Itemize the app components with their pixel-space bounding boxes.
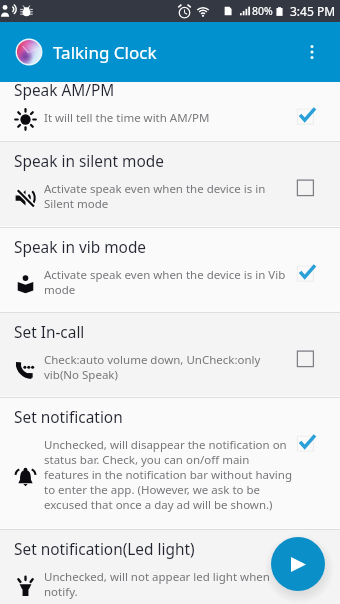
staticText: Speak AM/PM (14, 80, 115, 101)
staticText: Unchecked, will disappear the notificati… (44, 437, 287, 453)
button[interactable] (0, 312, 340, 397)
staticText: excused that once a day ad will be shown… (44, 497, 273, 513)
button[interactable]: Enabled (296, 434, 317, 455)
staticText: Unchecked, will not appear led light whe… (44, 569, 270, 585)
staticText: vib(No Speak) (44, 367, 118, 383)
staticText: Speak in vib mode (14, 237, 147, 258)
staticText: Set In-call (14, 322, 85, 343)
staticText: Set notification (14, 407, 123, 428)
button[interactable] (0, 397, 340, 529)
staticText: Check:auto volume down, UnCheck:only (44, 352, 261, 368)
staticText: mode (44, 282, 76, 298)
staticText: Activate speak even when the device is i… (44, 267, 286, 283)
button[interactable] (0, 141, 340, 227)
button[interactable]: Enabled (296, 264, 317, 285)
button[interactable]: Enabled (296, 107, 317, 128)
button[interactable]: Disabled (296, 566, 317, 587)
staticText: notify. (44, 584, 78, 600)
staticText: It will tell the time with AM/PM (44, 110, 210, 126)
button[interactable]: Play (271, 537, 325, 591)
button[interactable] (0, 529, 340, 604)
staticText: 80% (252, 4, 273, 18)
staticText: status bar. Check, you can on/off main (44, 452, 250, 468)
staticText: to enter the app. (However, we ask to be (44, 482, 261, 498)
button[interactable]: More options (292, 32, 332, 72)
staticText: Speak in silent mode (14, 151, 164, 172)
staticText: Silent mode (44, 196, 109, 212)
button[interactable] (0, 81, 340, 141)
staticText: Set notification(Led light) (14, 539, 195, 560)
staticText: Talking Clock (53, 41, 157, 64)
staticText: features in the notification bar without… (44, 467, 292, 483)
button[interactable]: Disabled (296, 349, 317, 370)
button[interactable]: Disabled (296, 178, 317, 199)
button[interactable] (0, 227, 340, 312)
staticText: Activate speak even when the device is i… (44, 181, 266, 197)
staticText: 3:45 PM (290, 3, 336, 19)
